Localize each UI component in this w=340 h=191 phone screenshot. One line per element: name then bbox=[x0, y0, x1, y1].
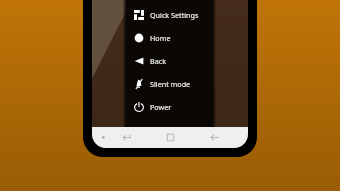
button[interactable]: Back bbox=[126, 49, 213, 72]
button[interactable]: Quick Settings bbox=[126, 3, 213, 26]
button[interactable]: Back bbox=[204, 127, 224, 148]
button[interactable]: Switch input method bbox=[93, 127, 113, 148]
button[interactable]: Home bbox=[126, 26, 213, 49]
button[interactable]: Silent mode bbox=[126, 72, 213, 95]
button[interactable]: Recents bbox=[160, 127, 180, 148]
button[interactable]: Power bbox=[126, 95, 213, 118]
staticText: Silent mode bbox=[150, 79, 191, 89]
staticText: Power bbox=[150, 102, 172, 112]
staticText: Back bbox=[150, 56, 166, 66]
staticText: Quick Settings bbox=[150, 10, 199, 20]
button[interactable]: Hide keyboard bbox=[116, 127, 136, 148]
staticText: Home bbox=[150, 33, 171, 43]
